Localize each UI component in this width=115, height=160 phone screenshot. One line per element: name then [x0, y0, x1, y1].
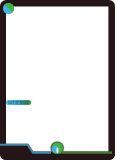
button[interactable]: GET IT NOW	[6, 100, 31, 105]
staticText: GET IT NOW	[8, 100, 29, 105]
button[interactable]: Open app	[50, 141, 64, 155]
button[interactable]: App logo	[3, 3, 14, 14]
